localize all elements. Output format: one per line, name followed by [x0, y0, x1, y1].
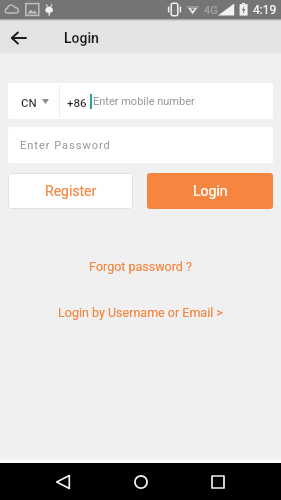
- button[interactable]: Forgot password ?: [0, 259, 281, 274]
- button[interactable]: Enter Password: [8, 127, 273, 163]
- staticText: Register: [45, 183, 97, 199]
- staticText: Enter mobile number: [93, 95, 195, 108]
- staticText: Login: [193, 183, 228, 199]
- staticText: Login: [64, 30, 99, 46]
- button[interactable]: CN: [8, 83, 59, 119]
- staticText: 4:19: [253, 3, 277, 17]
- button[interactable]: Register: [8, 173, 133, 209]
- button[interactable]: Back: [6, 25, 30, 49]
- staticText: +86: [67, 96, 87, 109]
- button[interactable]: Home: [126, 467, 156, 497]
- staticText: Enter Password: [20, 139, 111, 152]
- button[interactable]: Back: [48, 467, 78, 497]
- button[interactable]: Login: [147, 173, 273, 209]
- button[interactable]: Recents: [203, 467, 233, 497]
- button[interactable]: Login by Username or Email >: [0, 305, 281, 320]
- staticText: 4G: [204, 4, 218, 17]
- staticText: CN: [21, 96, 37, 109]
